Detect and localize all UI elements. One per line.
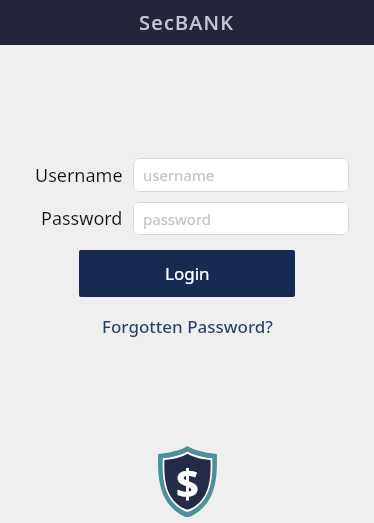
button[interactable]: password <box>133 202 349 235</box>
button[interactable]: username <box>133 158 349 192</box>
button[interactable]: Login <box>79 250 295 297</box>
staticText: $ <box>176 455 199 509</box>
staticText: password <box>143 209 211 229</box>
button[interactable]: SecBANK <box>0 0 374 45</box>
button[interactable]: Forgotten Password? <box>98 311 277 342</box>
staticText: Username <box>35 163 123 188</box>
staticText: username <box>143 165 215 185</box>
staticText: SecBANK <box>139 9 235 36</box>
staticText: Forgotten Password? <box>102 315 273 338</box>
staticText: Login <box>165 262 210 285</box>
staticText: Password <box>41 206 123 231</box>
